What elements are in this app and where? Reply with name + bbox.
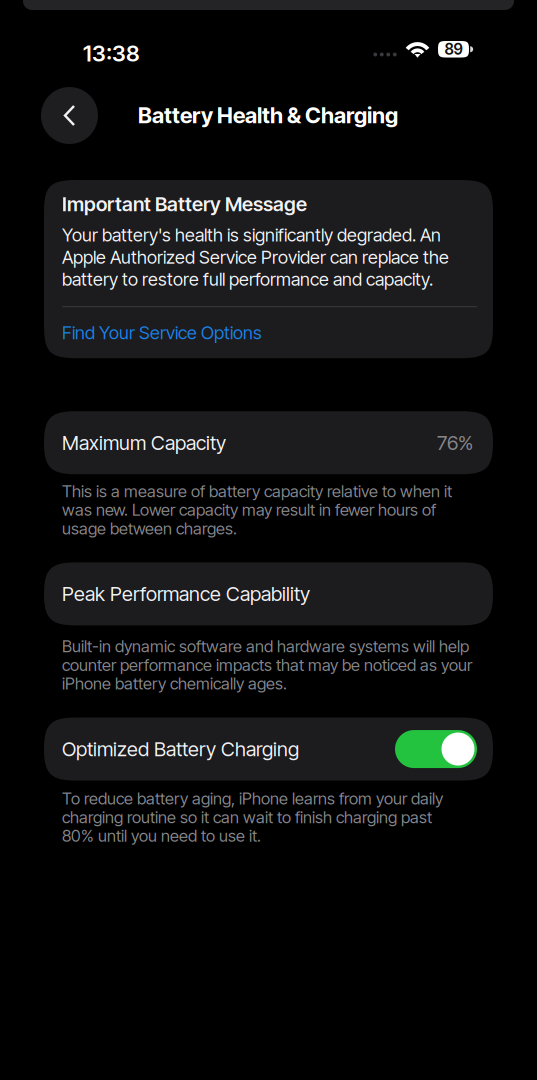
staticText: Optimized Battery Charging	[62, 737, 299, 761]
button[interactable]: Maximum Capacity	[44, 411, 493, 474]
staticText: 76%	[437, 431, 473, 455]
staticText: This is a measure of battery capacity re…	[62, 481, 452, 538]
staticText: 13:38	[83, 40, 140, 67]
button[interactable]: Optimized Battery Charging	[44, 718, 493, 781]
staticText: To reduce battery aging, iPhone learns f…	[62, 789, 443, 846]
staticText: Important Battery Message	[62, 192, 307, 216]
staticText: Peak Performance Capability	[62, 582, 310, 606]
staticText: 89	[444, 40, 462, 59]
staticText: Battery Health & Charging	[138, 102, 398, 129]
staticText: Built-in dynamic software and hardware s…	[62, 636, 472, 694]
button[interactable]: Back	[41, 87, 98, 144]
button[interactable]: Peak Performance Capability	[44, 562, 493, 625]
staticText: Find Your Service Options	[62, 322, 262, 344]
staticText: Maximum Capacity	[62, 431, 226, 455]
staticText: Your battery's health is significantly d…	[62, 224, 449, 290]
button[interactable]: Find Your Service Options	[62, 307, 262, 358]
